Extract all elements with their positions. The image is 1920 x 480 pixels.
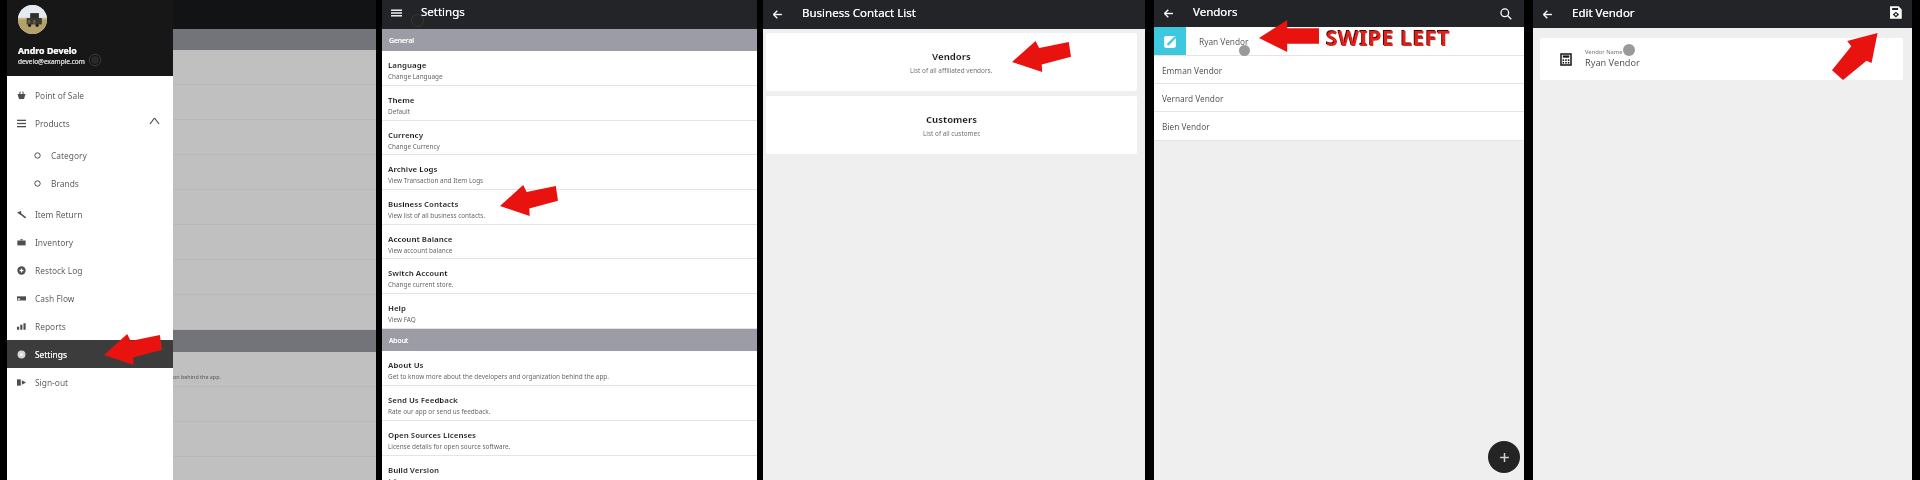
staticText: Category (51, 150, 87, 161)
staticText: Currency (388, 130, 424, 141)
staticText: Vendor Name (1585, 48, 1623, 56)
staticText: 1.0 (388, 477, 398, 480)
staticText: Change Currency (388, 142, 440, 151)
button[interactable]: Cash Flow (7, 284, 173, 312)
staticText: Change current store. (388, 280, 454, 289)
button[interactable]: Inventory (7, 228, 173, 256)
button[interactable]: Restock Log (7, 256, 173, 284)
staticText: View FAQ (388, 315, 416, 324)
staticText: SWIPE LEFT (1325, 22, 1450, 51)
button[interactable]: About Us (382, 351, 757, 386)
staticText: Cash Flow (35, 293, 75, 304)
staticText: Settings (421, 4, 465, 20)
staticText: Vendors (932, 50, 971, 63)
button[interactable]: Send Us Feedback (382, 386, 757, 421)
staticText: Business Contact List (802, 5, 916, 21)
staticText: Vendors (1193, 4, 1238, 20)
staticText: Products (35, 118, 70, 129)
staticText: Archive Logs (388, 164, 438, 175)
staticText: Default (388, 107, 410, 116)
staticText: Rate our app or send us feedback. (388, 407, 491, 416)
button[interactable]: Reports (7, 312, 173, 340)
staticText: View list of all business contacts. (388, 211, 486, 220)
button[interactable]: Language (382, 51, 757, 86)
staticText: Edit Vendor (1572, 5, 1635, 21)
button[interactable]: Category (7, 141, 173, 169)
staticText: Switch Account (388, 268, 448, 279)
staticText: Help (388, 303, 406, 314)
staticText: Item Return (35, 209, 83, 220)
staticText: Sign-out (35, 377, 69, 388)
staticText: View Transaction and Item Logs (388, 176, 484, 185)
staticText: Open Sources Licenses (388, 430, 476, 441)
staticText: Inventory (35, 237, 74, 248)
staticText: Restock Log (35, 265, 83, 276)
staticText: SWIPE LEFT (1326, 23, 1451, 52)
staticText: License details for open source software… (388, 442, 511, 451)
staticText: General (389, 36, 415, 45)
button[interactable]: Build Version (382, 456, 757, 480)
button[interactable]: Ryan Vendor (1154, 27, 1524, 56)
button[interactable]: Switch Account (382, 259, 757, 294)
button[interactable]: Item Return (7, 200, 173, 228)
button[interactable]: Currency (382, 121, 757, 155)
staticText: Settings (35, 349, 67, 360)
button[interactable]: Back (772, 9, 783, 20)
staticText: Change Language (388, 72, 443, 81)
button[interactable]: Open navigation drawer (391, 9, 402, 17)
staticText: Ryan Vendor (1585, 56, 1640, 69)
button[interactable]: Vernard Vendor (1154, 84, 1524, 112)
button[interactable]: Save (1889, 6, 1902, 19)
staticText: Brands (51, 178, 79, 189)
button[interactable]: Emman Vendor (1154, 56, 1524, 84)
button[interactable]: Brands (7, 169, 173, 197)
staticText: Ryan Vendor (1199, 36, 1249, 47)
staticText: Vernard Vendor (1162, 93, 1224, 104)
button[interactable]: Add vendor (1488, 441, 1520, 473)
staticText: View account balance (388, 246, 453, 255)
button[interactable]: Vendors (766, 33, 1137, 91)
button[interactable]: Help (382, 294, 757, 329)
staticText: Emman Vendor (1162, 65, 1223, 76)
button[interactable]: Open Sources Licenses (382, 421, 757, 456)
staticText: Point of Sale (35, 90, 85, 101)
staticText: Reports (35, 321, 66, 332)
staticText: Send Us Feedback (388, 395, 458, 406)
staticText: List of all affiliated vendors. (910, 66, 993, 75)
button[interactable]: Bien Vendor (1154, 112, 1524, 141)
staticText: Customers (926, 113, 978, 126)
button[interactable]: Archive Logs (382, 155, 757, 190)
button[interactable]: Theme (382, 86, 757, 121)
staticText: List of all customer. (923, 129, 981, 138)
staticText: develo@example.com (18, 57, 85, 66)
button[interactable]: Back (1163, 8, 1174, 19)
staticText: About (389, 336, 409, 345)
staticText: on behind the app. (173, 373, 221, 380)
staticText: Account Balance (388, 234, 453, 245)
staticText: Andro Develo (18, 45, 77, 57)
button[interactable]: Products (7, 109, 173, 137)
button[interactable]: Vendor Name (1540, 38, 1903, 80)
button[interactable]: Sign-out (7, 368, 173, 396)
button[interactable]: Point of Sale (7, 81, 173, 109)
staticText: Language (388, 60, 427, 71)
staticText: Get to know more about the developers an… (388, 372, 610, 381)
button[interactable]: Back (1542, 9, 1553, 20)
staticText: Build Version (388, 465, 440, 476)
staticText: About Us (388, 360, 424, 371)
button[interactable]: Business Contacts (382, 190, 757, 225)
staticText: Business Contacts (388, 199, 459, 210)
button[interactable]: Account Balance (382, 225, 757, 259)
button[interactable]: Customers (766, 96, 1137, 154)
button[interactable]: Search (1500, 8, 1512, 20)
staticText: Theme (388, 95, 415, 106)
button[interactable]: Settings (7, 340, 173, 368)
staticText: Bien Vendor (1162, 121, 1210, 132)
